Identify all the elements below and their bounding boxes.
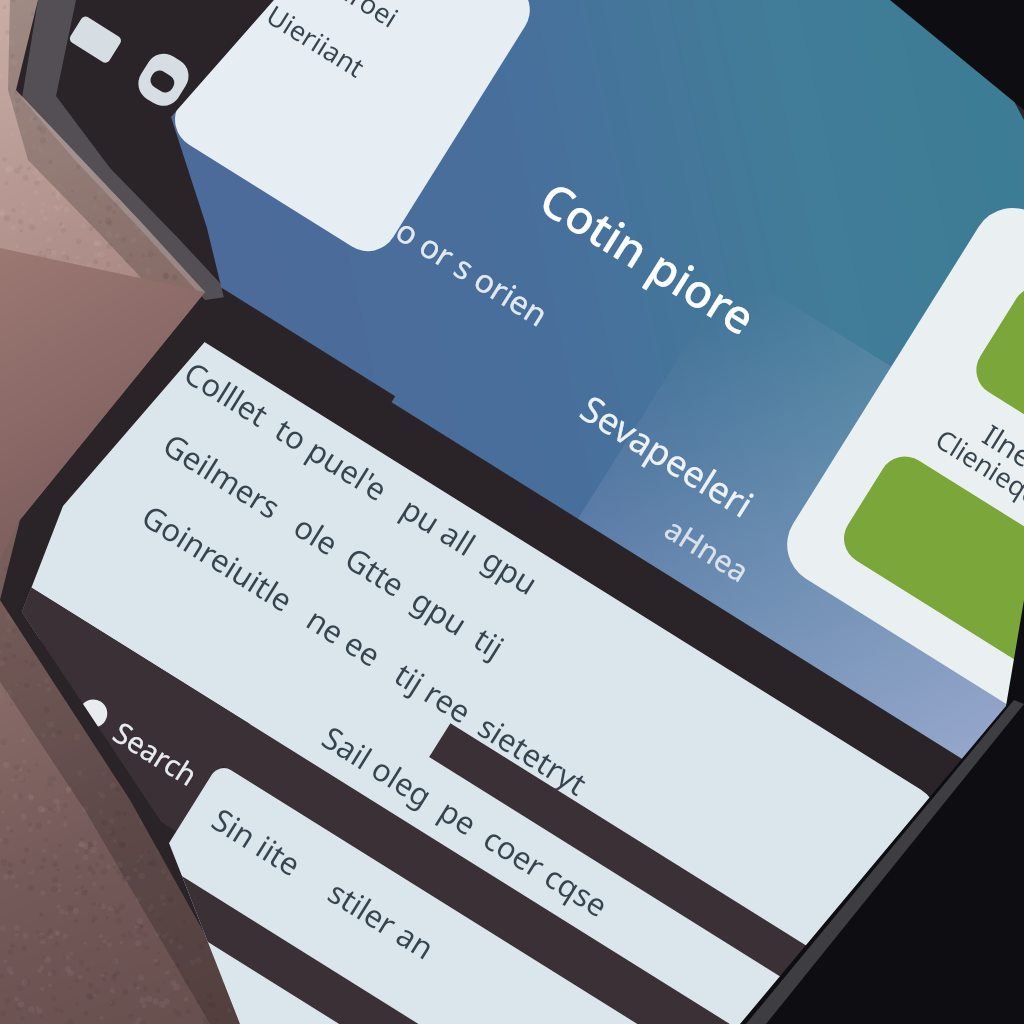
button[interactable]: Suggested actions bbox=[770, 240, 1024, 680]
button[interactable]: Notification card bbox=[170, 0, 560, 250]
button[interactable]: Search bbox=[20, 640, 310, 800]
